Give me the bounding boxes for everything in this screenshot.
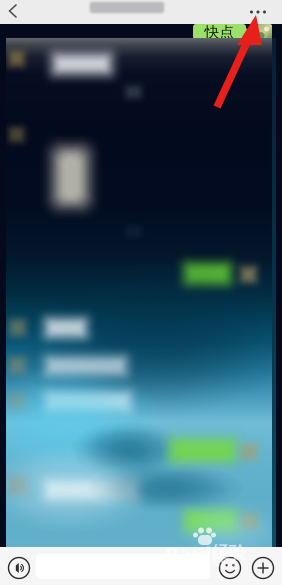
- staticText: 经验: [212, 542, 246, 563]
- button[interactable]: More: [238, 0, 278, 24]
- button[interactable]: Back: [0, 0, 30, 24]
- staticText: 快点: [204, 23, 234, 41]
- button[interactable]: Voice message: [4, 551, 34, 585]
- staticText: jingyan.baidu.com: [166, 558, 234, 569]
- button[interactable]: Add: [248, 551, 278, 585]
- staticText: Baidu: [165, 540, 225, 568]
- button[interactable]: Emoji: [215, 551, 245, 585]
